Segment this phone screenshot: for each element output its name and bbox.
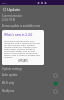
staticText: Improved background sync reliability and… <box>4 39 42 59</box>
staticText: 2.3.0 (118) <box>2 18 15 22</box>
staticText: Update <box>7 7 21 12</box>
button[interactable]: Auto update <box>0 71 64 79</box>
staticText: UPDATE <box>18 59 29 63</box>
staticText: 9:41 <box>2 1 7 4</box>
button[interactable]: Back <box>1 6 7 12</box>
button[interactable]: Wi-Fi only <box>0 79 64 87</box>
staticText: What's new in 2.4.0 <box>4 33 33 37</box>
staticText: Update settings <box>2 67 23 71</box>
staticText: A new update is available now <box>2 24 40 28</box>
button[interactable]: Notify me <box>0 87 64 95</box>
button[interactable]: UPDATE <box>18 59 29 63</box>
staticText: Auto update <box>2 73 18 77</box>
staticText: Current version <box>2 14 22 18</box>
staticText: Notify me <box>2 89 15 93</box>
staticText: Wi-Fi only <box>2 81 15 85</box>
